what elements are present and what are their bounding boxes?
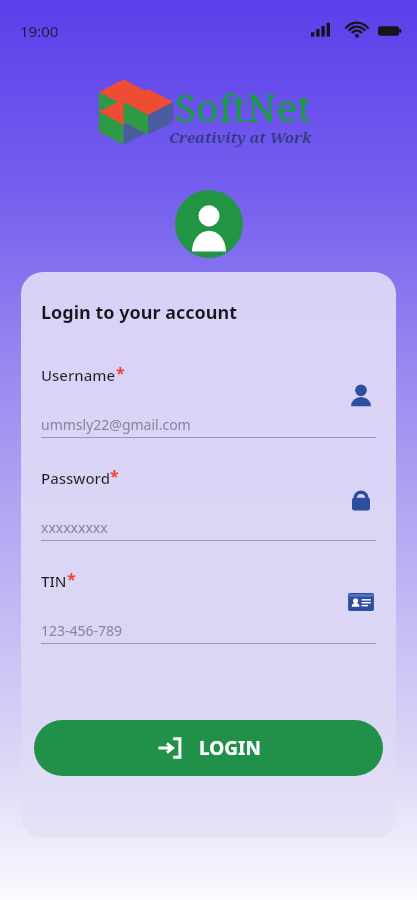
button[interactable]: Profile avatar [175, 190, 243, 258]
staticText: xxxxxxxxx [41, 518, 108, 537]
staticText: * [116, 362, 125, 384]
staticText: TIN [41, 571, 67, 591]
button[interactable]: Username [346, 381, 376, 411]
staticText: LOGIN [199, 735, 261, 761]
button[interactable]: Password [346, 484, 376, 514]
staticText: 123-456-789 [41, 621, 123, 640]
staticText: 19:00 [20, 21, 59, 41]
button[interactable]: TIN [346, 587, 376, 617]
staticText: Username [41, 365, 116, 385]
button[interactable]: LOGIN [34, 720, 383, 776]
staticText: SoftNet [175, 80, 312, 133]
staticText: * [67, 568, 76, 590]
staticText: ummsly22@gmail.com [41, 415, 191, 434]
staticText: Password [41, 468, 110, 488]
staticText: Creativity at Work [169, 127, 312, 147]
staticText: Login to your account [41, 300, 237, 325]
staticText: * [110, 465, 119, 487]
